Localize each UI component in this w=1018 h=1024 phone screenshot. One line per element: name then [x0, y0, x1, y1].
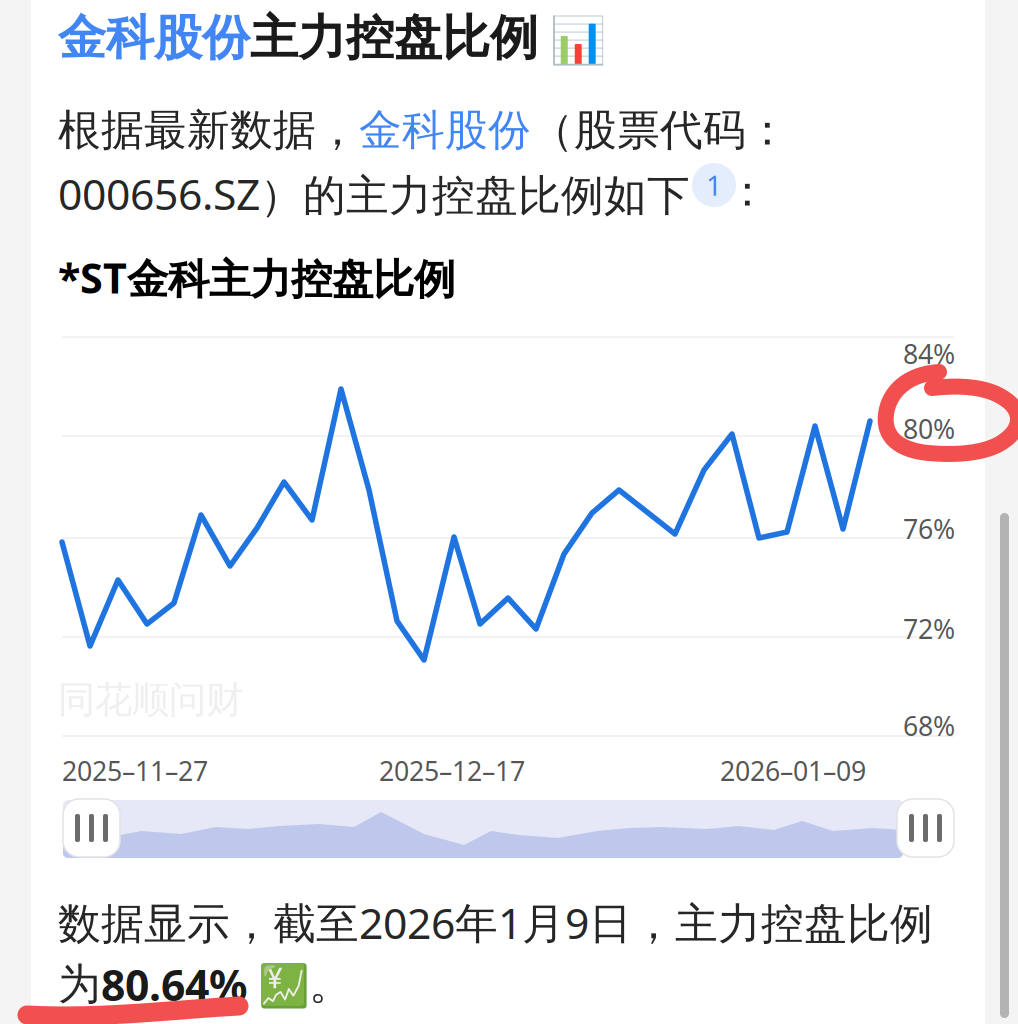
staticText: （股票代码：: [531, 104, 789, 156]
staticText: 金科股份: [359, 104, 531, 156]
staticText: 💹: [247, 957, 309, 1012]
button[interactable]: Adjust range: [897, 799, 954, 857]
button[interactable]: Adjust range: [63, 799, 120, 857]
staticText: 金科股份: [58, 9, 250, 68]
staticText: 2026–01–09: [720, 753, 866, 788]
staticText: 68%: [903, 708, 955, 743]
staticText: 80%: [903, 411, 955, 446]
staticText: 数据显示，截至2026年1月9日，主力控盘比例: [58, 894, 933, 951]
button[interactable]: Citation 1: [692, 163, 736, 207]
staticText: 80.64%: [101, 956, 247, 1013]
staticText: ：: [726, 165, 769, 217]
staticText: 72%: [903, 611, 955, 646]
staticText: 📊: [538, 8, 606, 68]
staticText: 84%: [903, 336, 955, 371]
staticText: 1: [706, 166, 722, 204]
staticText: 2025–11–27: [62, 753, 208, 788]
staticText: 同花顺问财: [58, 677, 243, 723]
staticText: 2025–12–17: [379, 753, 525, 788]
staticText: 000656.SZ）的主力控盘比例如下: [58, 165, 690, 222]
staticText: 主力控盘比例: [250, 9, 538, 68]
staticText: 76%: [903, 511, 955, 546]
staticText: 根据最新数据，: [58, 104, 359, 156]
staticText: *ST金科主力控盘比例: [58, 250, 455, 305]
staticText: 为: [58, 958, 101, 1010]
staticText: 。: [309, 958, 352, 1010]
